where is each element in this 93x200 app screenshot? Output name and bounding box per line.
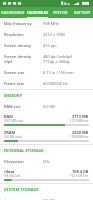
staticText: f2fs (43, 159, 89, 164)
button[interactable]: ZRAM (0, 128, 93, 144)
staticText: 416 ppi (43, 43, 89, 48)
staticText: Screen density (dpi) (4, 54, 43, 64)
button[interactable]: RAM (0, 112, 93, 128)
staticText: ZRAM (4, 130, 16, 135)
staticText: 3713 MB (72, 114, 89, 119)
button[interactable]: /data (0, 167, 93, 183)
staticText: 2.5 GB (43, 198, 89, 200)
button[interactable]: SYSTEM (50, 7, 71, 18)
staticText: MEMORY (4, 93, 23, 98)
staticText: 998 MHz (43, 21, 89, 26)
staticText: Screen density (4, 43, 43, 48)
staticText: RAM (4, 114, 13, 119)
button[interactable]: RAM size (0, 101, 93, 112)
staticText: 480 dpi (xxhdpi) 771dp x 360dp (43, 54, 89, 64)
staticText: Screen size (4, 70, 43, 75)
button[interactable]: Screen density (dpi) (0, 51, 93, 67)
staticText: 2220 MB (72, 130, 89, 135)
staticText: Filesystem (4, 159, 43, 164)
staticText: Max frequency (4, 21, 43, 26)
staticText: DASHBOARD (1, 10, 25, 15)
staticText: 1908 MB free (70, 135, 89, 139)
button[interactable]: DASHBOARD (0, 7, 25, 18)
button[interactable]: BATTERY (71, 7, 93, 18)
staticText: 1012 MB free (70, 119, 89, 123)
staticText: Frame rate (4, 81, 43, 86)
staticText: 2212 x 1080 (43, 32, 89, 37)
staticText: 108.4 GB (72, 169, 89, 174)
staticText: INTERNAL STORAGE (4, 148, 44, 153)
staticText: RAM size (4, 104, 43, 109)
staticText: /system (4, 198, 43, 200)
button[interactable]: Screen density (0, 40, 93, 51)
button[interactable]: Screen size (0, 67, 93, 78)
staticText: 6.0 GB (43, 104, 89, 109)
button[interactable]: Filesystem (0, 156, 93, 167)
staticText: 2601 MB used (4, 119, 24, 123)
staticText: 6.13 in / 156 mm (43, 70, 89, 75)
staticText: /data (4, 169, 15, 174)
staticText: 60.000004 Hz (43, 81, 89, 86)
staticText: BATTERY (74, 10, 91, 15)
staticText: HARDWARE (27, 10, 49, 15)
staticText: SYSTEM STORAGE (4, 187, 39, 192)
button[interactable]: HARDWARE (25, 7, 50, 18)
staticText: SYSTEM (53, 10, 68, 15)
staticText: Resolution (4, 32, 43, 37)
staticText: 102.9 GB free (70, 174, 89, 178)
button[interactable]: Frame rate (0, 78, 93, 89)
button[interactable]: Max frequency (0, 18, 93, 29)
staticText: 9.8 GB used (4, 174, 21, 178)
button[interactable]: Resolution (0, 29, 93, 40)
button[interactable]: /system (0, 195, 93, 200)
staticText: 342 MB used (4, 135, 22, 139)
